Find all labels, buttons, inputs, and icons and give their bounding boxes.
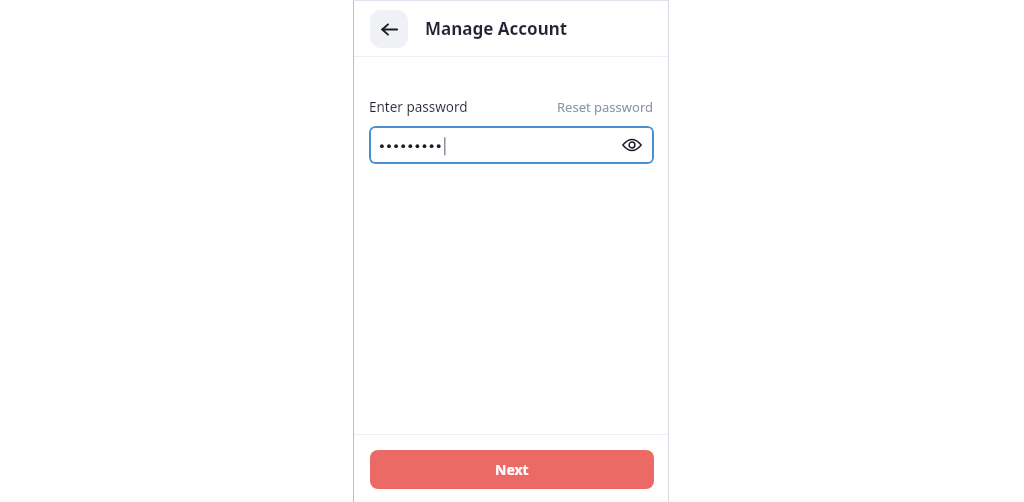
button[interactable]: Next [370, 450, 654, 489]
button[interactable]: Back [370, 10, 408, 48]
button[interactable]: Show password [618, 131, 646, 159]
staticText: Reset password [557, 98, 653, 116]
staticText: Next [495, 460, 529, 479]
button[interactable]: Reset password [556, 97, 654, 117]
staticText: Enter password [369, 98, 468, 116]
staticText: Manage Account [425, 17, 568, 40]
button[interactable]: Show password [369, 126, 654, 164]
